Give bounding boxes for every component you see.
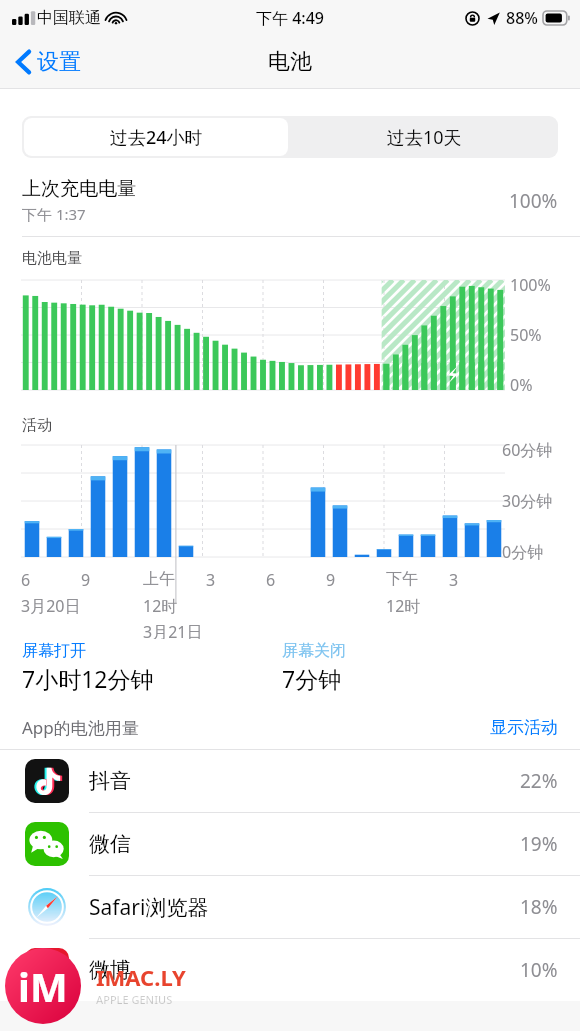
staticText: 6	[266, 569, 276, 591]
staticText: 微博	[89, 957, 520, 983]
staticText: 电池电量	[22, 249, 82, 268]
staticText: 中国联通	[37, 8, 101, 28]
button[interactable]: 微博	[0, 939, 580, 1001]
staticText: 过去24小时	[110, 125, 203, 150]
staticText: 屏幕打开	[22, 641, 86, 661]
staticText: 微信	[89, 831, 520, 857]
staticText: 12时	[386, 595, 421, 617]
staticText: 100%	[509, 188, 558, 214]
staticText: App的电池用量	[22, 716, 490, 739]
staticText: 下午 1:37	[22, 204, 86, 224]
staticText: iM	[18, 959, 68, 1013]
staticText: 3	[449, 569, 459, 591]
staticText: 88%	[506, 7, 538, 29]
staticText: 50%	[510, 324, 542, 346]
staticText: 18%	[520, 894, 558, 920]
button[interactable]: 过去10天	[290, 116, 558, 158]
staticText: 60分钟	[502, 439, 553, 461]
staticText: APPLE GENIUS	[96, 992, 173, 1007]
staticText: 0分钟	[502, 541, 544, 563]
staticText: 下午 4:49	[256, 7, 324, 29]
staticText: 3月20日	[21, 595, 81, 617]
staticText: 100%	[510, 274, 551, 296]
staticText: 22%	[520, 768, 558, 794]
staticText: 0%	[510, 374, 533, 396]
button[interactable]: Safari浏览器	[0, 876, 580, 938]
staticText: 10%	[520, 957, 558, 983]
button[interactable]: 设置	[12, 44, 85, 80]
staticText: 3	[206, 569, 216, 591]
staticText: 抖音	[89, 768, 520, 794]
button[interactable]: 抖音	[0, 750, 580, 812]
button[interactable]: 上次充电电量	[0, 163, 580, 236]
staticText: 9	[326, 569, 336, 591]
staticText: IMAC.LY	[96, 962, 186, 992]
staticText: 30分钟	[502, 490, 553, 512]
staticText: 屏幕关闭	[282, 641, 346, 661]
staticText: 9	[81, 569, 91, 591]
staticText: Safari浏览器	[89, 893, 520, 922]
staticText: 7分钟	[282, 663, 342, 694]
button[interactable]: 显示活动	[490, 717, 558, 738]
staticText: 6	[21, 569, 31, 591]
staticText: 上次充电电量	[22, 177, 136, 201]
staticText: 12时	[143, 595, 178, 617]
staticText: 过去10天	[387, 125, 462, 150]
staticText: 7小时12分钟	[22, 663, 154, 694]
staticText: 活动	[22, 416, 52, 435]
staticText: 上午	[143, 569, 175, 589]
staticText: 显示活动	[490, 717, 558, 738]
staticText: 3月21日	[143, 621, 203, 643]
button[interactable]: 过去24小时	[24, 118, 288, 156]
button[interactable]: 微信	[0, 813, 580, 875]
staticText: 19%	[520, 831, 558, 857]
staticText: 电池	[268, 48, 312, 76]
staticText: 设置	[37, 48, 81, 76]
staticText: 下午	[386, 569, 418, 589]
